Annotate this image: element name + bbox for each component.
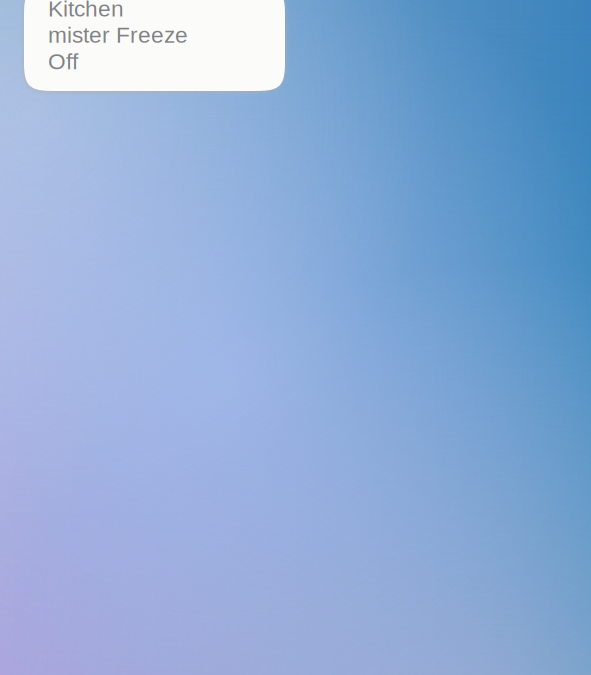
- staticText: Off: [48, 49, 78, 74]
- staticText: mister Freeze: [48, 22, 188, 48]
- staticText: Kitchen: [48, 0, 124, 21]
- button[interactable]: Kitchen: [24, 0, 285, 91]
